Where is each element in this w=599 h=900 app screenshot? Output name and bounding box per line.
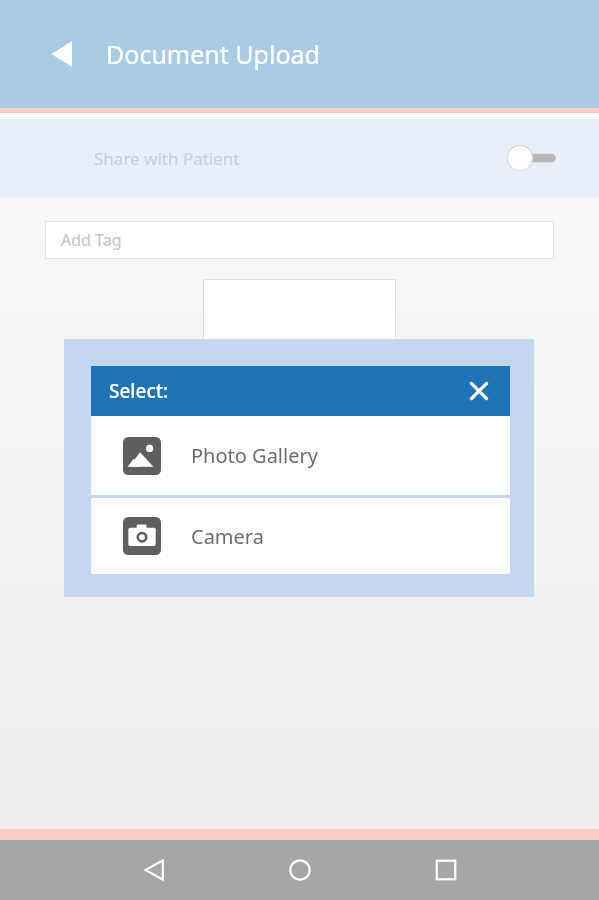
button[interactable]: Camera [91,498,510,574]
button[interactable]: Back [40,32,84,76]
button[interactable]: Photo Gallery [91,416,510,495]
button[interactable]: Close [462,374,496,408]
button[interactable]: Back [131,847,177,893]
staticText: Photo Gallery [191,442,318,469]
button[interactable]: Add Tag [45,221,554,259]
staticText: Select: [109,378,169,404]
staticText: Camera [191,523,264,550]
button[interactable]: Share with Patient toggle [507,145,559,171]
button[interactable]: Select: [91,366,510,416]
button[interactable]: Home [277,847,323,893]
button[interactable] [203,279,396,384]
button[interactable]: Recents [423,847,469,893]
staticText: Document Upload [106,37,320,71]
staticText: Add Tag [61,229,122,251]
staticText: Share with Patient [94,147,240,170]
button[interactable]: Share with Patient [0,119,599,197]
